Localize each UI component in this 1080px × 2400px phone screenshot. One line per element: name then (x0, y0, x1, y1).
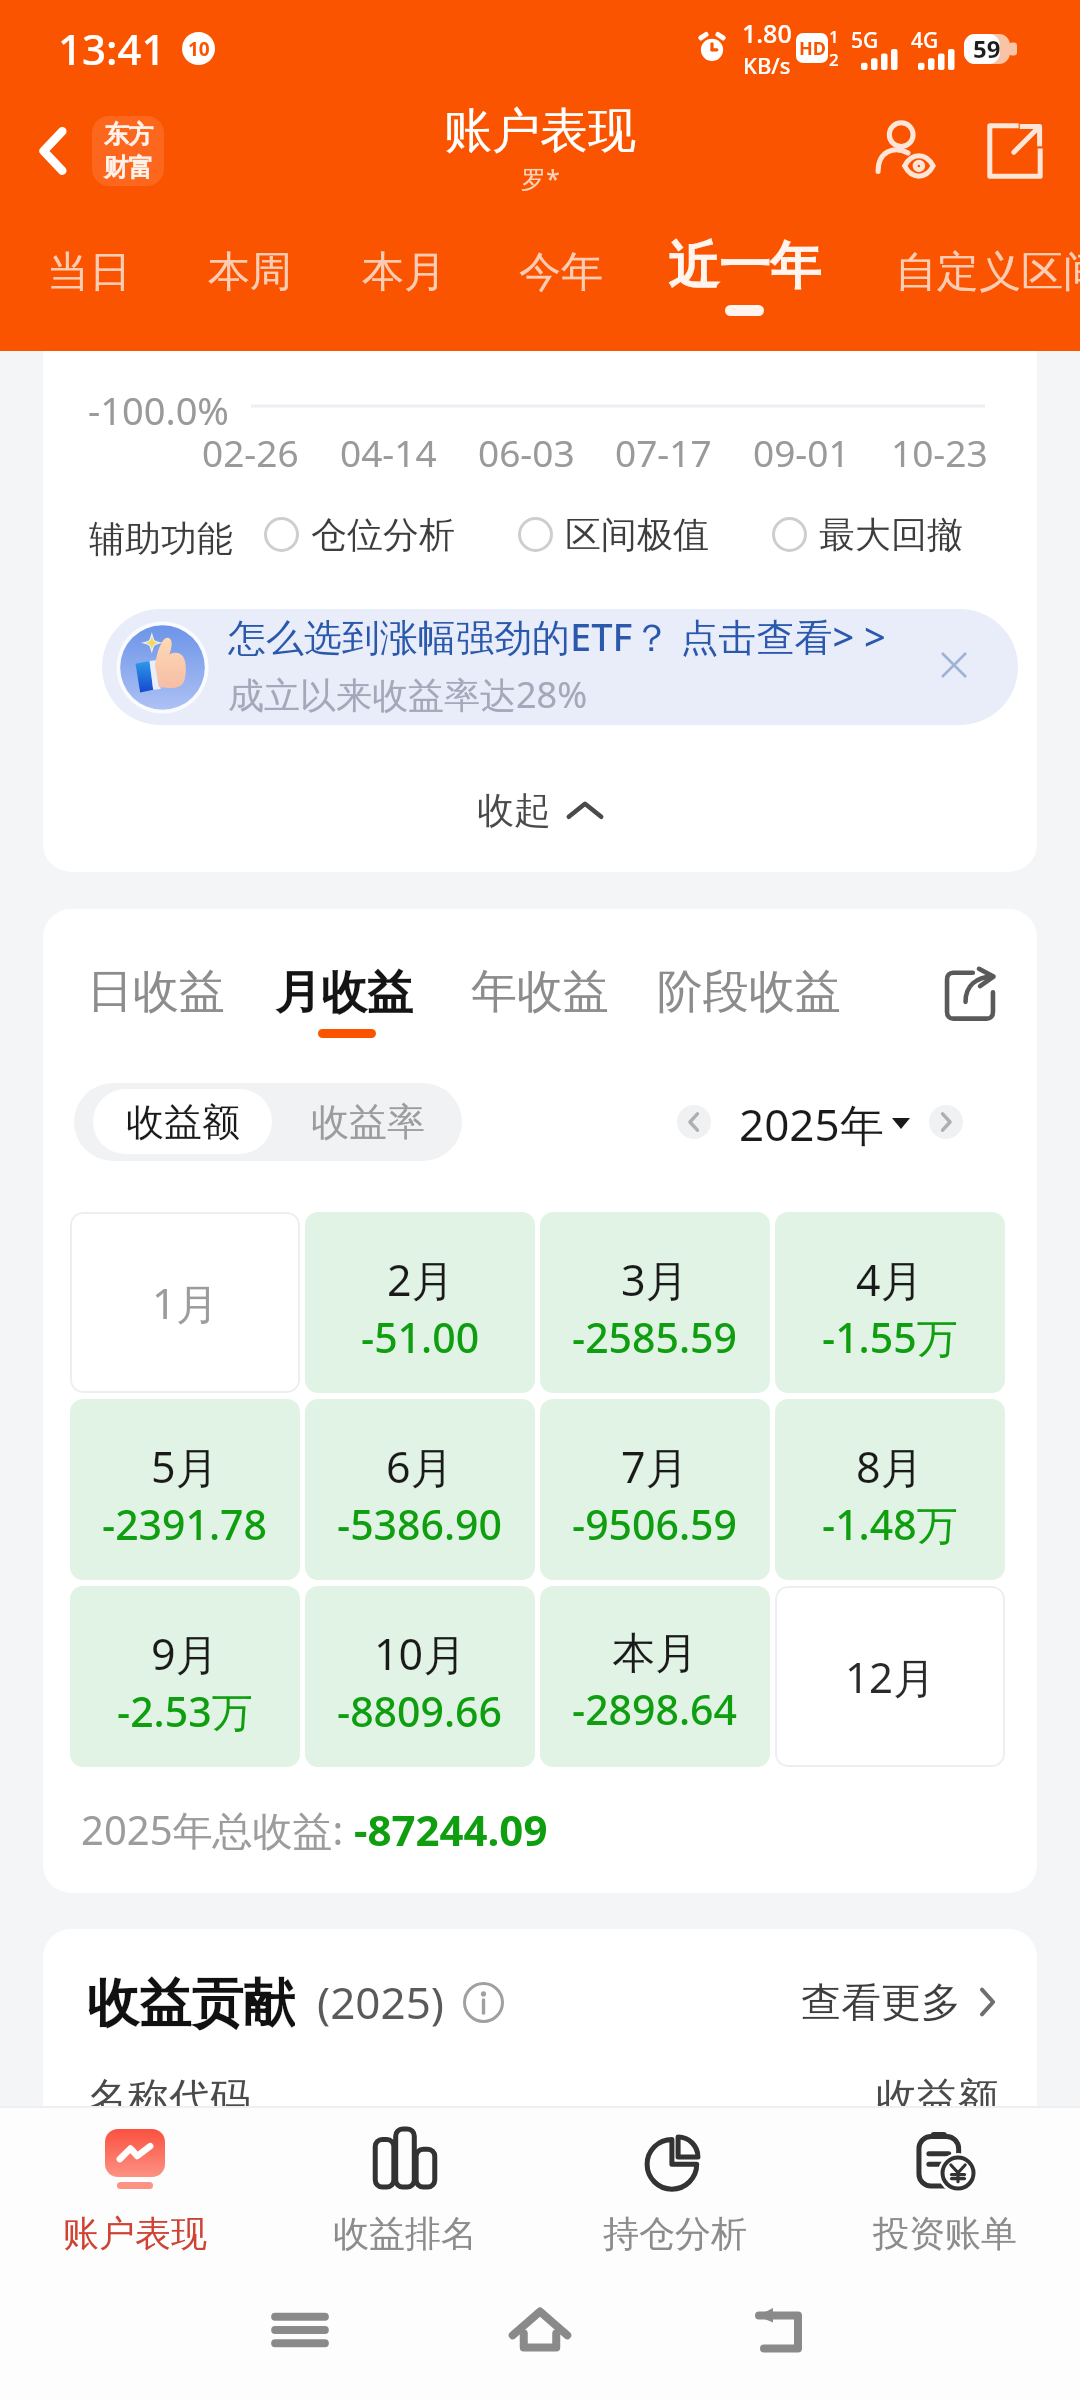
staticText: 收益贡献 (87, 1971, 295, 2033)
staticText: 成立以来收益率达28% (228, 670, 588, 719)
button[interactable]: 月收益 (275, 959, 413, 1027)
button[interactable]: 账户表现 (0, 2107, 270, 2260)
button[interactable]: 阶段收益 (657, 960, 841, 1024)
button[interactable]: 7月 (540, 1399, 770, 1580)
staticText: 09-01 (753, 427, 850, 477)
staticText: 收起 (477, 787, 551, 834)
button[interactable]: 本月 (540, 1586, 770, 1767)
button[interactable]: 3月 (540, 1212, 770, 1393)
button[interactable]: 10月 (305, 1586, 535, 1767)
staticText: (2025) (317, 1972, 445, 2032)
button[interactable]: 2月 (305, 1212, 535, 1393)
staticText: 本周 (208, 246, 292, 299)
staticText: -1.55万 (822, 1309, 958, 1365)
staticText: 名称代码 (87, 2073, 251, 2125)
staticText: 查看更多 (801, 1977, 961, 2027)
staticText: 收益率 (311, 1098, 425, 1146)
staticText: 本月 (612, 1627, 698, 1681)
button[interactable]: 9月 (70, 1586, 300, 1767)
button[interactable]: 4月 (775, 1212, 1005, 1393)
staticText: -1.48万 (822, 1496, 958, 1552)
staticText: 1月 (152, 1274, 219, 1331)
button[interactable]: Share (977, 113, 1053, 189)
staticText: 最大回撤 (819, 512, 963, 557)
button[interactable]: 收起 (410, 765, 670, 855)
staticText: 辅助功能 (89, 516, 233, 561)
staticText: 1 (829, 25, 839, 48)
staticText: 2025年总收益: (81, 1802, 354, 1857)
staticText: 07-17 (615, 427, 712, 477)
button[interactable]: Close (921, 632, 987, 698)
staticText: 投资账单 (873, 2211, 1017, 2256)
staticText: 收益额 (876, 2073, 999, 2125)
button[interactable]: 5月 (70, 1399, 300, 1580)
button[interactable]: 收益排名 (270, 2107, 540, 2260)
button[interactable]: Account (866, 109, 950, 193)
staticText: 罗* (521, 161, 560, 195)
button[interactable]: 收益率 (278, 1083, 457, 1161)
staticText: -2391.78 (102, 1496, 268, 1552)
button[interactable]: Share (938, 962, 1002, 1026)
staticText: 收益排名 (333, 2211, 477, 2256)
button[interactable]: 8月 (775, 1399, 1005, 1580)
staticText: 2 (829, 48, 839, 71)
button[interactable]: 今年 (493, 218, 629, 351)
staticText: 年收益 (471, 963, 609, 1021)
staticText: 账户表现 (63, 2211, 207, 2256)
staticText: 59 (973, 32, 1001, 65)
button[interactable]: Back (20, 117, 88, 185)
button[interactable]: 年收益 (471, 960, 609, 1024)
button[interactable]: 本周 (182, 218, 318, 351)
staticText: 今年 (519, 246, 603, 299)
button[interactable]: 收益额 (93, 1089, 272, 1154)
staticText: 04-14 (340, 427, 437, 477)
staticText: 收益额 (126, 1098, 240, 1146)
button[interactable]: Home (490, 2280, 590, 2380)
staticText: 当日 (47, 246, 131, 299)
button[interactable]: 12月 (775, 1586, 1005, 1767)
staticText: 近一年 (668, 234, 821, 298)
staticText: 月收益 (275, 964, 413, 1022)
staticText: 7月 (621, 1437, 689, 1496)
staticText: 4G (911, 26, 939, 55)
button[interactable]: 2025年 (739, 1094, 910, 1152)
staticText: HD (799, 36, 826, 61)
button[interactable]: 区间极值 (518, 508, 709, 560)
button[interactable]: Previous year (670, 1098, 718, 1146)
button[interactable]: Back (730, 2280, 830, 2380)
button[interactable]: 持仓分析 (540, 2107, 810, 2260)
staticText: 2月 (387, 1250, 455, 1309)
button[interactable]: 仓位分析 (264, 508, 455, 560)
staticText: 财富 (104, 152, 153, 183)
staticText: 10 (188, 36, 210, 62)
staticText: 8月 (856, 1437, 924, 1496)
staticText: 9月 (151, 1624, 219, 1683)
button[interactable]: 近一年 (632, 218, 856, 351)
button[interactable]: 当日 (21, 218, 157, 351)
staticText: 持仓分析 (603, 2211, 747, 2256)
staticText: -5386.90 (337, 1496, 503, 1552)
button[interactable]: 最大回撤 (772, 508, 963, 560)
staticText: 10-23 (891, 427, 988, 477)
staticText: -51.00 (361, 1309, 480, 1365)
button[interactable]: 6月 (305, 1399, 535, 1580)
staticText: 本月 (362, 246, 446, 299)
button[interactable]: 投资账单 (810, 2107, 1080, 2260)
staticText: 06-03 (478, 427, 575, 477)
button[interactable]: Next year (922, 1098, 970, 1146)
staticText: 12月 (845, 1648, 936, 1705)
staticText: -2898.64 (572, 1681, 738, 1737)
button[interactable]: 1月 (70, 1212, 300, 1393)
button[interactable]: 怎么选到涨幅强劲的ETF？ 点击查看> > (102, 609, 1018, 725)
button[interactable]: Recents (250, 2280, 350, 2380)
staticText: 区间极值 (565, 512, 709, 557)
staticText: -100.0% (88, 384, 229, 436)
button[interactable]: 日收益 (87, 960, 225, 1024)
button[interactable]: 本月 (336, 218, 472, 351)
staticText: 5G (851, 26, 879, 55)
staticText: 2025年 (739, 1094, 884, 1152)
button[interactable]: 查看更多 (801, 1977, 1001, 2027)
button[interactable]: 自定义区间 (869, 218, 1080, 351)
staticText: 1.80 (742, 16, 792, 50)
button[interactable]: East Money (92, 116, 164, 186)
